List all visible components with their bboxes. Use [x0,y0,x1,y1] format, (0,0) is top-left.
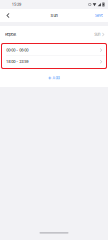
staticText: 00:00 - 06:00 [6,48,28,52]
staticText: Repeat [5,32,16,37]
staticText: Sun [94,32,100,37]
button[interactable]: 18:00 - 23:59 [3,56,105,67]
button[interactable]: 00:00 - 06:00 [3,45,105,56]
staticText: 18:00 - 23:59 [6,59,28,64]
button[interactable]: Save [91,9,107,22]
staticText: Sun [50,13,57,18]
staticText: Add [52,76,59,80]
button[interactable]: Repeat [0,26,108,43]
staticText: Save [95,13,103,18]
staticText: 15:29 [12,2,21,7]
button[interactable]: Back [1,9,15,22]
button[interactable]: Add [0,69,108,87]
